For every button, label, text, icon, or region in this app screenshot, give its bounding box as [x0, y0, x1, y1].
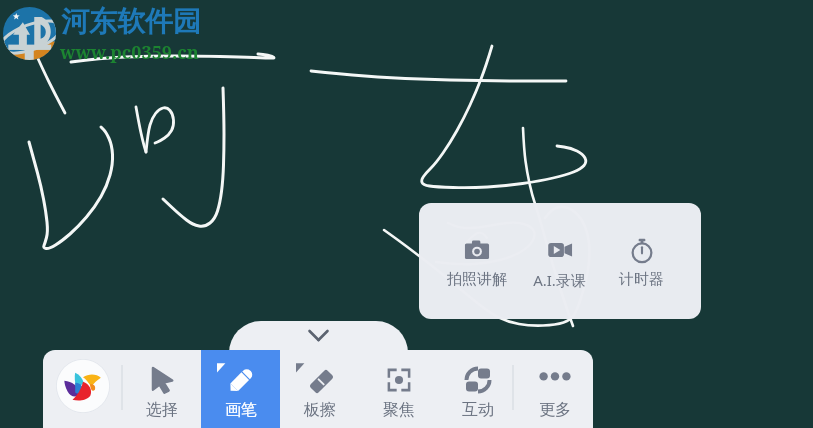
staticText: 画笔 — [225, 400, 257, 420]
staticText: A.I.录课 — [533, 270, 586, 290]
button[interactable]: 拍照讲解 — [436, 236, 518, 298]
staticText: 板擦 — [304, 400, 336, 420]
staticText: 拍照讲解 — [447, 270, 507, 289]
staticText: 更多 — [539, 400, 571, 420]
staticText: 选择 — [146, 400, 178, 420]
button[interactable]: A.I.录课 — [518, 236, 600, 298]
button[interactable]: Collapse toolbar — [229, 321, 408, 353]
staticText: www.pc0359.cn — [60, 40, 199, 65]
button[interactable]: 计时器 — [600, 236, 682, 298]
staticText: 互动 — [462, 400, 494, 420]
button[interactable]: 聚焦 — [359, 350, 438, 428]
button[interactable]: 画笔 — [201, 350, 280, 428]
staticText: 计时器 — [619, 270, 664, 289]
staticText: 河东软件园 — [61, 4, 201, 39]
button[interactable]: 互动 — [438, 350, 517, 428]
staticText: 聚焦 — [383, 400, 415, 420]
button[interactable]: 选择 — [122, 350, 201, 428]
button[interactable]: 更多 — [517, 350, 593, 428]
button[interactable]: Seewo menu — [43, 350, 122, 428]
button[interactable]: 板擦 — [280, 350, 359, 428]
